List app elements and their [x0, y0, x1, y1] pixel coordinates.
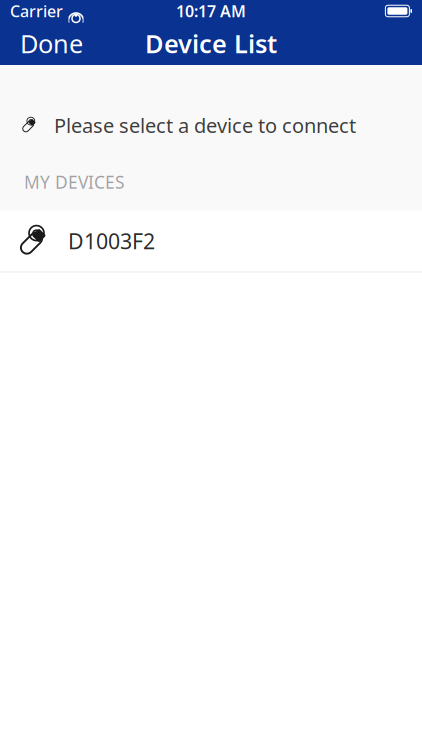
- staticText: Carrier: [10, 0, 63, 22]
- staticText: Done: [20, 27, 83, 60]
- staticText: Please select a device to connect: [54, 112, 356, 139]
- staticText: D1003F2: [68, 227, 155, 255]
- button[interactable]: Done: [14, 21, 89, 66]
- staticText: 10:17 AM: [176, 0, 246, 22]
- staticText: MY DEVICES: [24, 171, 125, 194]
- staticText: Device List: [145, 27, 277, 60]
- button[interactable]: D1003F2: [0, 211, 422, 272]
